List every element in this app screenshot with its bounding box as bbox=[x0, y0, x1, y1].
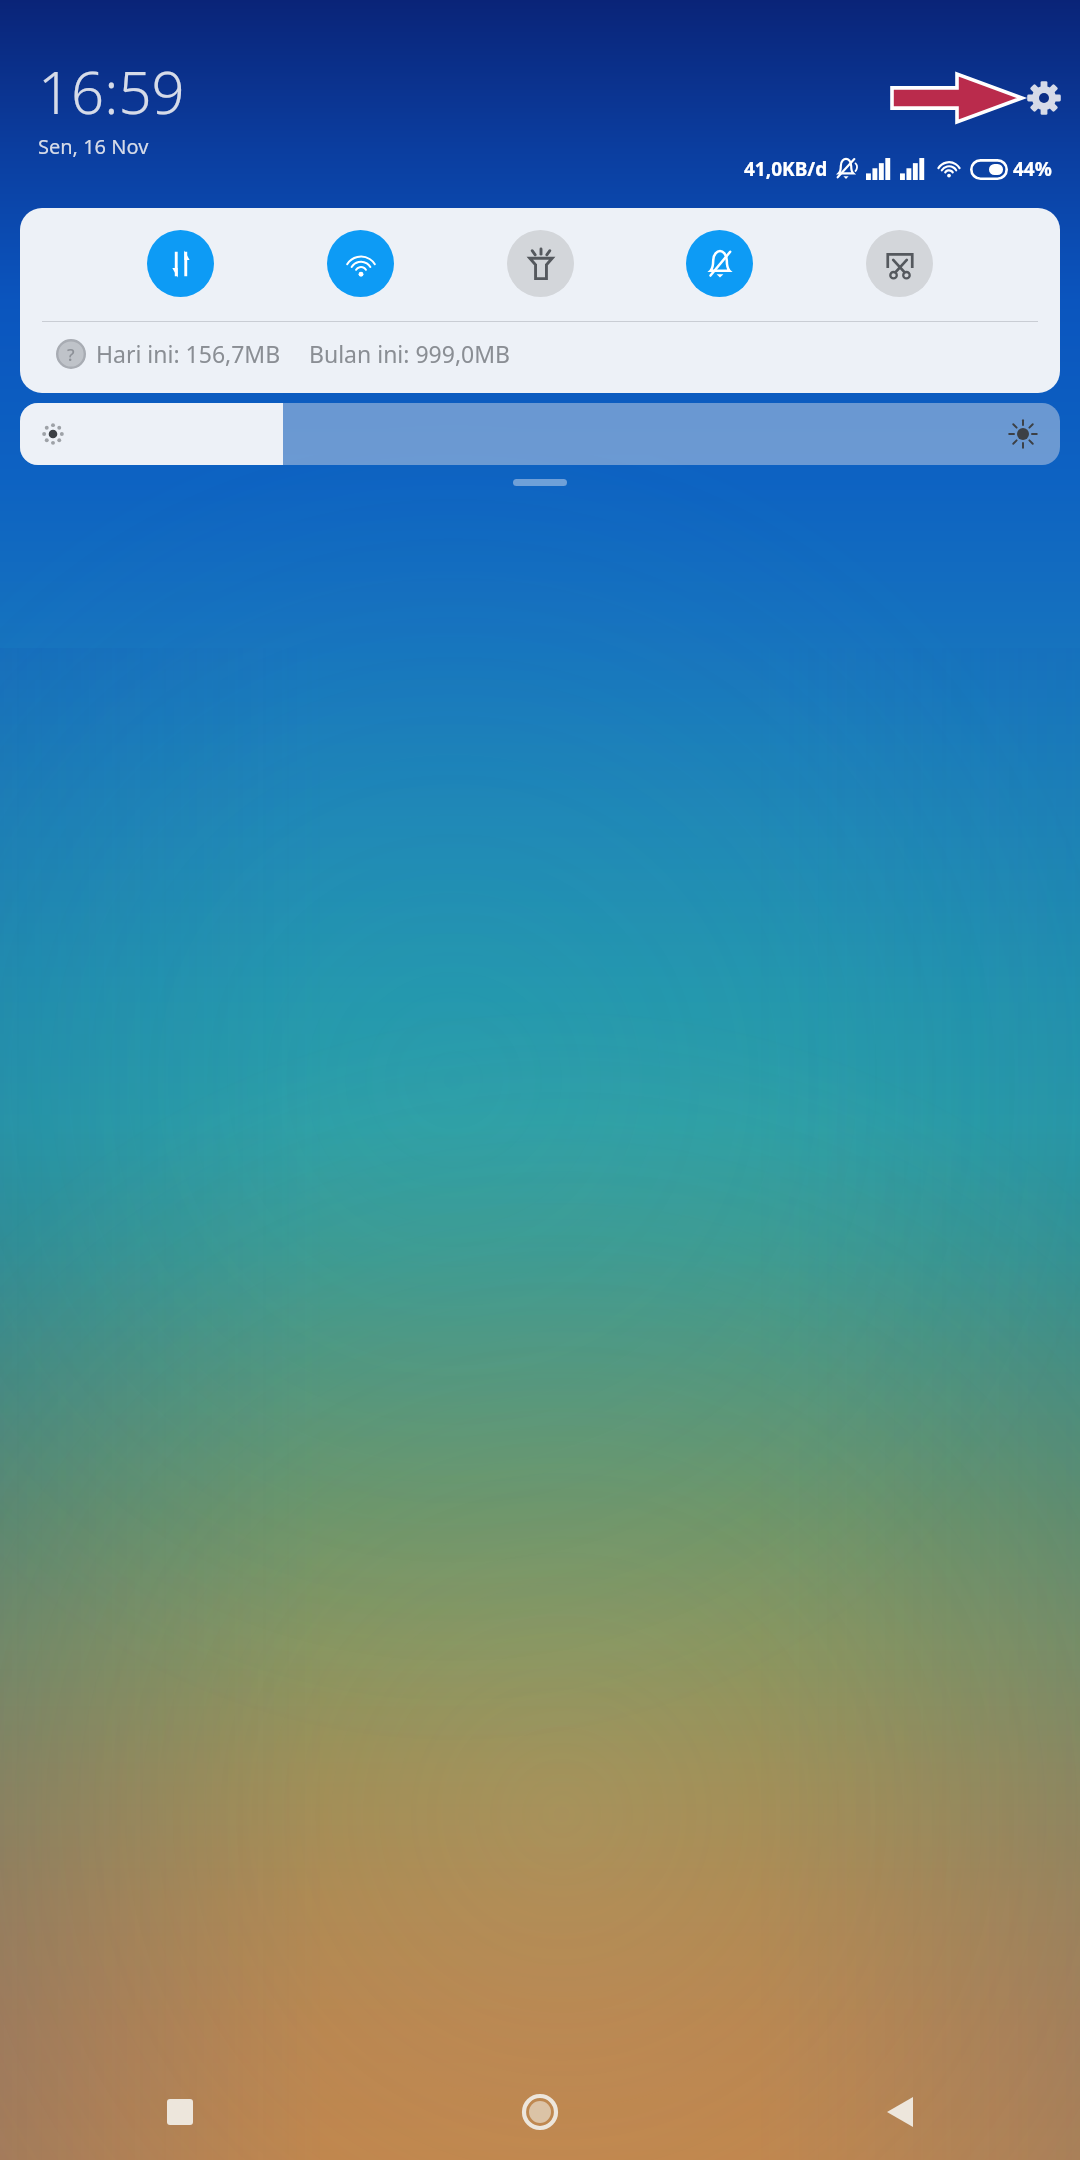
button[interactable]: ? bbox=[56, 338, 1060, 369]
staticText: Bulan ini: 999,0MB bbox=[309, 338, 511, 369]
staticText: 16:59 bbox=[38, 52, 185, 131]
button[interactable]: Back bbox=[720, 2064, 1080, 2160]
staticText: 44% bbox=[1013, 156, 1052, 182]
staticText: Hari ini: 156,7MB bbox=[96, 338, 281, 369]
button[interactable]: Home bbox=[360, 2064, 720, 2160]
button[interactable]: Brightness bbox=[20, 403, 1060, 465]
button[interactable] bbox=[513, 479, 567, 486]
staticText: ? bbox=[67, 343, 75, 366]
button[interactable]: Recents bbox=[0, 2064, 360, 2160]
button[interactable]: Silent mode bbox=[686, 230, 753, 297]
staticText: Sen, 16 Nov bbox=[38, 133, 149, 160]
button[interactable]: Wi-Fi bbox=[327, 230, 394, 297]
staticText: 41,0KB/d bbox=[744, 156, 828, 182]
button[interactable]: Flashlight bbox=[507, 230, 574, 297]
button[interactable]: Settings bbox=[1024, 78, 1064, 118]
button[interactable]: Screenshot bbox=[866, 230, 933, 297]
button[interactable]: Mobile data bbox=[147, 230, 214, 297]
